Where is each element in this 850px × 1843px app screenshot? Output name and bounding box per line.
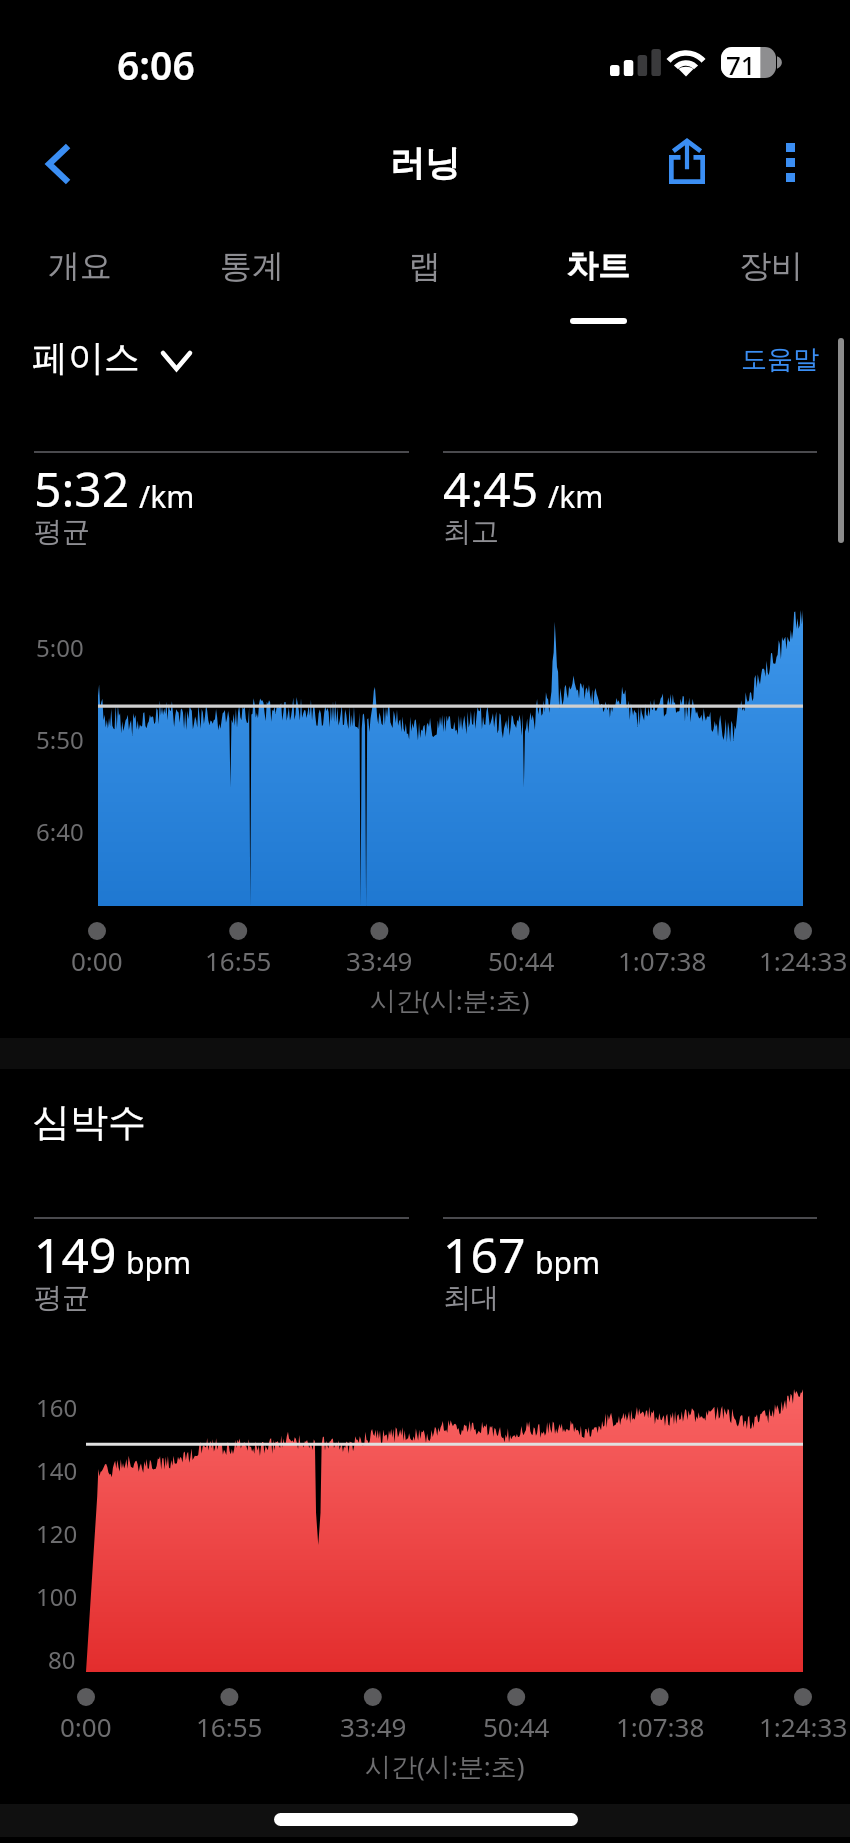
staticText: 167 — [443, 1222, 526, 1287]
staticText: 통계 — [220, 246, 284, 286]
staticText: 16:55 — [205, 943, 272, 978]
staticText: 러닝 — [0, 141, 850, 185]
staticText: 시간(시:분:초) — [370, 982, 530, 1018]
staticText: 16:55 — [196, 1709, 263, 1744]
staticText: 심박수 — [32, 1098, 146, 1146]
staticText: 개요 — [48, 246, 112, 286]
staticText: 160 — [36, 1391, 78, 1424]
button[interactable]: More options — [756, 123, 825, 200]
staticText: 4:45 — [443, 456, 539, 521]
staticText: 장비 — [739, 246, 803, 286]
button[interactable]: 페이스 — [28, 328, 190, 386]
staticText: /km — [548, 476, 604, 517]
staticText: 100 — [36, 1580, 78, 1613]
staticText: 140 — [36, 1454, 78, 1487]
staticText: 5:32 — [34, 456, 130, 521]
button[interactable]: 랩 — [347, 225, 503, 320]
staticText: 120 — [36, 1517, 78, 1550]
staticText: 차트 — [566, 246, 630, 286]
button[interactable]: Back — [14, 125, 100, 202]
staticText: 평균 — [34, 1280, 90, 1315]
staticText: 1:24:33 — [759, 943, 848, 978]
staticText: /km — [139, 476, 195, 517]
staticText: 1:07:38 — [616, 1709, 705, 1744]
staticText: 50:44 — [488, 943, 555, 978]
staticText: 5:00 — [36, 631, 84, 664]
staticText: 0:00 — [71, 943, 123, 978]
staticText: 시간(시:분:초) — [365, 1748, 525, 1784]
staticText: 33:49 — [346, 943, 413, 978]
staticText: 0:00 — [60, 1709, 112, 1744]
staticText: bpm — [126, 1242, 191, 1283]
button[interactable]: 도움말 — [730, 330, 830, 388]
staticText: 페이스 — [32, 335, 140, 380]
staticText: 평균 — [34, 514, 90, 549]
staticText: 6:06 — [117, 38, 195, 91]
staticText: 최대 — [443, 1280, 499, 1315]
staticText: 1:24:33 — [759, 1709, 848, 1744]
staticText: 도움말 — [741, 343, 819, 376]
staticText: bpm — [535, 1242, 600, 1283]
staticText: 33:49 — [340, 1709, 407, 1744]
staticText: 149 — [34, 1222, 117, 1287]
staticText: 80 — [48, 1643, 76, 1676]
button[interactable]: 장비 — [693, 225, 849, 320]
staticText: 1:07:38 — [618, 943, 707, 978]
staticText: 5:50 — [36, 723, 84, 756]
staticText: 랩 — [409, 246, 441, 286]
button[interactable]: 차트 — [520, 225, 676, 320]
button[interactable]: 개요 — [2, 225, 158, 320]
staticText: 71 — [726, 47, 756, 79]
staticText: 최고 — [443, 514, 499, 549]
button[interactable]: 통계 — [174, 225, 330, 320]
staticText: 6:40 — [36, 815, 84, 848]
staticText: 50:44 — [483, 1709, 550, 1744]
button[interactable]: Share — [653, 123, 720, 200]
